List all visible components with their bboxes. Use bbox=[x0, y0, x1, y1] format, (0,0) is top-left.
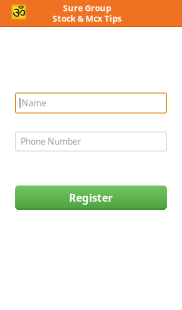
staticText: Register bbox=[69, 190, 113, 205]
button[interactable]: Name bbox=[15, 93, 166, 113]
staticText: Name bbox=[21, 97, 46, 109]
staticText: Phone Number bbox=[20, 136, 81, 147]
staticText: Stock & Mcx Tips bbox=[52, 13, 121, 24]
staticText: ॐ bbox=[12, 2, 25, 22]
button[interactable]: Register bbox=[15, 185, 166, 209]
button[interactable]: Phone Number bbox=[15, 132, 166, 151]
staticText: Sure Group bbox=[63, 2, 111, 14]
